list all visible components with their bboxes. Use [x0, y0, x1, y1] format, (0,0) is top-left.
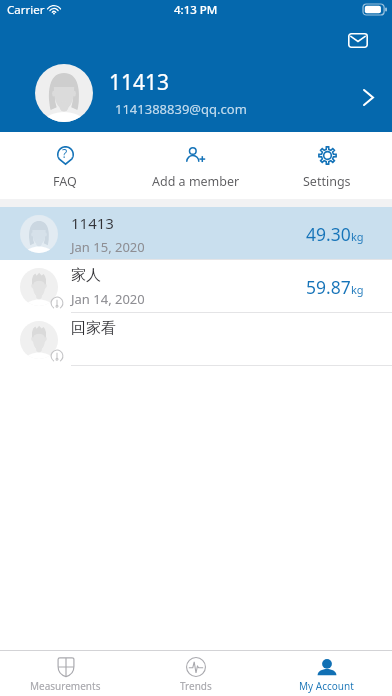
staticText: 4:13 PM — [174, 2, 218, 18]
staticText: Measurements — [30, 679, 101, 693]
button[interactable]: 家人 — [0, 260, 392, 313]
staticText: 59.87 — [306, 275, 351, 299]
staticText: 11413 — [109, 68, 170, 97]
button[interactable]: 回家看 — [0, 313, 392, 366]
staticText: kg — [351, 229, 364, 244]
staticText: 家人 — [71, 266, 101, 285]
button[interactable]: 11413 — [0, 57, 392, 129]
staticText: 1141388839@qq.com — [115, 100, 247, 118]
button[interactable]: Trends — [130, 651, 261, 693]
staticText: Carrier — [7, 2, 45, 18]
button[interactable]: Add a member — [130, 132, 261, 190]
staticText: 回家看 — [71, 319, 116, 338]
button[interactable]: Messages — [340, 23, 376, 57]
button[interactable]: My Account — [261, 651, 392, 693]
staticText: kg — [351, 282, 364, 297]
staticText: Settings — [303, 173, 351, 190]
staticText: 49.30 — [306, 222, 351, 246]
staticText: Jan 14, 2020 — [71, 290, 145, 308]
staticText: ? — [62, 145, 68, 161]
staticText: Add a member — [152, 173, 240, 190]
button[interactable]: Measurements — [0, 651, 130, 693]
staticText: Jan 15, 2020 — [71, 238, 145, 256]
staticText: My Account — [299, 679, 354, 693]
staticText: FAQ — [53, 173, 77, 190]
button[interactable]: Settings — [261, 132, 392, 190]
staticText: Trends — [180, 679, 212, 693]
staticText: 11413 — [71, 213, 114, 233]
button[interactable]: ? — [0, 132, 130, 190]
button[interactable]: 11413 — [0, 207, 392, 260]
